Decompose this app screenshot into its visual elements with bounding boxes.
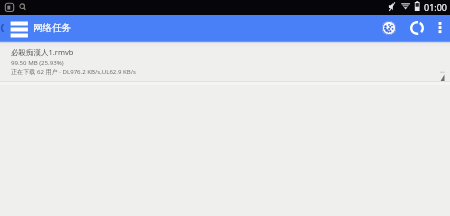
button[interactable]: Refresh (403, 15, 431, 41)
staticText: 必殺痴漢人1.rmvb (11, 47, 74, 57)
staticText: 网络任务 (33, 22, 71, 34)
staticText: 01:00 (424, 1, 448, 13)
button[interactable]: Browser (375, 15, 403, 41)
button[interactable]: Open navigation drawer (0, 15, 30, 41)
staticText: 正在下载 62 用户 · DL976.2 KB/s,UL62.9 KB/s (11, 67, 136, 75)
button[interactable]: More options (431, 15, 449, 41)
staticText: 99.50 MB (25.93%) (11, 58, 64, 66)
button[interactable]: 必殺痴漢人1.rmvb (0, 48, 450, 82)
